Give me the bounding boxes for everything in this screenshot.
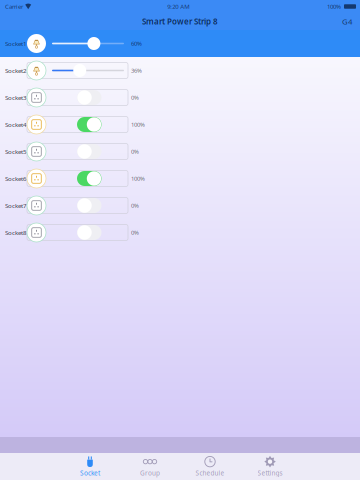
button[interactable]: G4: [342, 16, 360, 27]
button[interactable]: Group: [120, 453, 180, 479]
staticText: Group: [140, 469, 160, 477]
staticText: G4: [342, 16, 352, 27]
button[interactable]: Settings: [240, 453, 300, 479]
staticText: Settings: [257, 469, 282, 477]
button[interactable]: Socket1: [0, 30, 360, 57]
staticText: 9:20 AM: [167, 2, 189, 11]
button[interactable]: Socket: [60, 453, 120, 479]
staticText: 0%: [131, 93, 139, 101]
staticText: Socket4: [5, 120, 27, 129]
staticText: Socket: [80, 469, 100, 477]
button[interactable]: Socket5: [0, 138, 360, 165]
staticText: 0%: [131, 147, 139, 155]
button[interactable]: Socket2: [0, 57, 360, 84]
staticText: Schedule: [195, 469, 224, 477]
staticText: Socket1: [5, 39, 27, 48]
staticText: Carrier: [5, 2, 23, 11]
button[interactable]: Schedule: [180, 453, 240, 479]
button[interactable]: Socket3: [0, 84, 360, 111]
staticText: Smart Power Strip 8: [142, 16, 218, 27]
staticText: Socket2: [5, 66, 27, 75]
staticText: Socket3: [5, 93, 27, 102]
staticText: 100%: [131, 174, 145, 182]
staticText: 0%: [131, 201, 139, 209]
staticText: 100%: [327, 2, 341, 11]
staticText: 100%: [131, 120, 145, 128]
staticText: Socket5: [5, 147, 27, 156]
button[interactable]: Socket7: [0, 192, 360, 219]
staticText: Socket7: [5, 201, 27, 210]
button[interactable]: Socket6: [0, 165, 360, 192]
staticText: 0%: [131, 228, 139, 236]
staticText: Socket6: [5, 174, 27, 183]
button[interactable]: Socket4: [0, 111, 360, 138]
staticText: Socket8: [5, 228, 27, 237]
button[interactable]: Socket8: [0, 219, 360, 246]
staticText: 60%: [131, 39, 142, 47]
staticText: 36%: [131, 66, 142, 74]
